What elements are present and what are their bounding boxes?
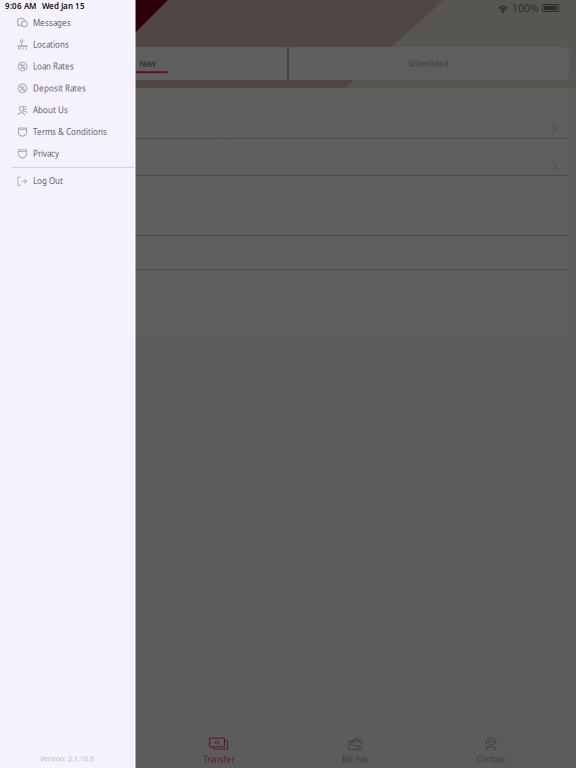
button[interactable]: Contact — [431, 732, 551, 767]
button[interactable]: Loan Rates — [0, 56, 134, 77]
staticText: Deposit Rates — [33, 83, 86, 94]
staticText: Scheduled — [408, 58, 448, 69]
button[interactable]: Locations — [0, 34, 134, 56]
button[interactable]: Log Out — [0, 170, 134, 192]
staticText: Wed Jan 15 — [42, 1, 85, 11]
staticText: Bill Pay — [342, 754, 368, 765]
button[interactable]: About Us — [0, 99, 134, 121]
button[interactable]: Messages — [0, 12, 134, 34]
staticText: New — [139, 58, 155, 69]
button[interactable]: Transfer from account — [7, 88, 569, 138]
staticText: Privacy — [33, 148, 59, 159]
staticText: Terms & Conditions — [33, 127, 107, 137]
button[interactable]: New — [7, 47, 288, 80]
staticText: Transfer — [203, 754, 234, 765]
staticText: 100% — [512, 1, 539, 15]
staticText: Version: 2.1.10.9 — [40, 754, 94, 763]
staticText: Log Out — [33, 176, 63, 186]
staticText: Loan Rates — [33, 61, 74, 72]
button[interactable]: Deposit Rates — [0, 77, 134, 99]
button[interactable]: Bill Pay — [295, 732, 415, 767]
staticText: Locations — [33, 39, 69, 50]
staticText: About Us — [33, 105, 68, 115]
button[interactable]: Transfer — [159, 732, 279, 767]
staticText: Messages — [33, 18, 71, 28]
button[interactable]: Transfer to account — [7, 138, 569, 175]
button[interactable]: Terms & Conditions — [0, 121, 134, 143]
staticText: Contact — [476, 754, 505, 765]
button[interactable]: Privacy — [0, 143, 134, 165]
staticText: 9:06 AM — [5, 1, 36, 11]
